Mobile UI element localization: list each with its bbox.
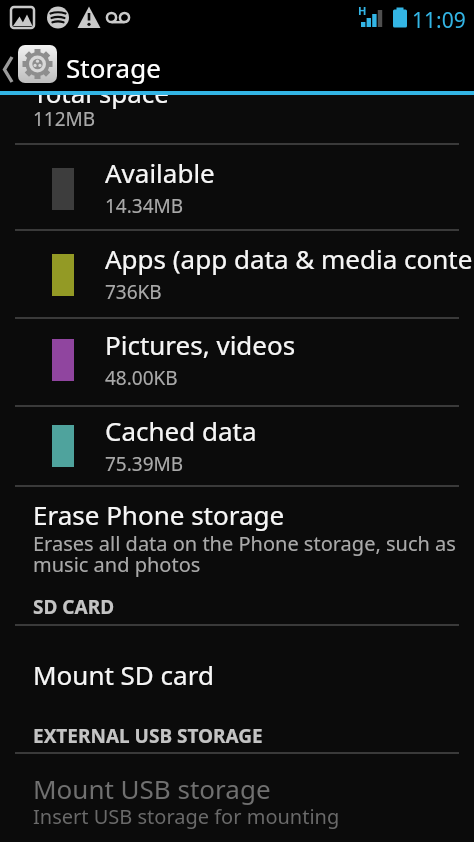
staticText: Erases all data on the Phone storage, su… bbox=[33, 530, 456, 557]
staticText: 736KB bbox=[105, 279, 162, 305]
staticText: Pictures, videos bbox=[105, 327, 296, 362]
staticText: Cached data bbox=[105, 413, 257, 448]
staticText: 48.00KB bbox=[105, 365, 178, 391]
staticText: SD CARD bbox=[33, 594, 115, 620]
staticText: Apps (app data & media content) bbox=[105, 241, 474, 276]
staticText: 14.34MB bbox=[105, 193, 184, 219]
staticText: Erase Phone storage bbox=[33, 497, 285, 532]
staticText: Total space bbox=[33, 75, 169, 110]
staticText: H bbox=[358, 3, 367, 18]
staticText: Mount SD card bbox=[33, 657, 214, 692]
staticText: music and photos bbox=[33, 551, 201, 578]
staticText: 112MB bbox=[33, 106, 96, 132]
staticText: Mount USB storage bbox=[33, 771, 271, 806]
staticText: Insert USB storage for mounting bbox=[33, 803, 340, 830]
staticText: Storage bbox=[66, 50, 161, 85]
staticText: Available bbox=[105, 155, 215, 190]
staticText: EXTERNAL USB STORAGE bbox=[33, 723, 263, 749]
staticText: 11:09 bbox=[412, 6, 466, 35]
staticText: 75.39MB bbox=[105, 451, 184, 477]
